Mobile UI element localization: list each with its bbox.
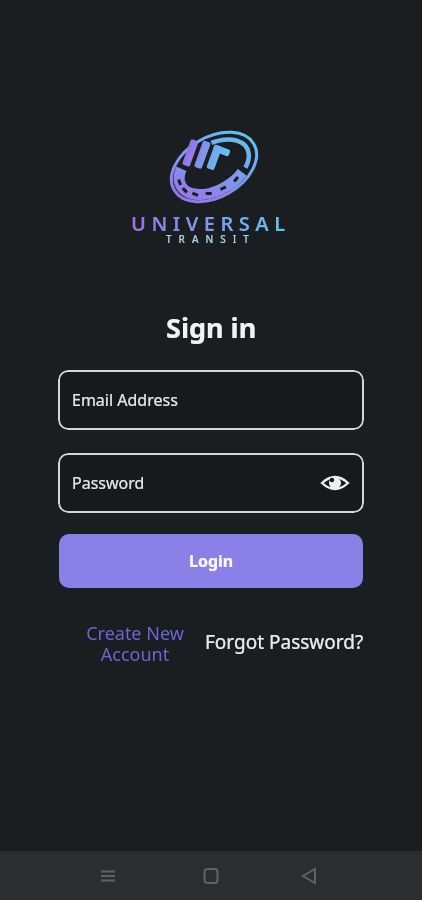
button[interactable]: Create New Account bbox=[86, 621, 184, 667]
button[interactable]: Password bbox=[58, 453, 364, 513]
button[interactable] bbox=[296, 862, 324, 890]
button[interactable]: Login bbox=[59, 534, 363, 588]
button[interactable]: Email Address bbox=[58, 370, 364, 430]
button[interactable] bbox=[197, 862, 225, 890]
staticText: Sign in bbox=[166, 309, 257, 346]
staticText: Email Address bbox=[72, 389, 178, 411]
button[interactable] bbox=[321, 469, 349, 497]
button[interactable]: Forgot Password? bbox=[205, 629, 364, 655]
staticText: UNIVERSAL bbox=[131, 210, 291, 237]
staticText: Login bbox=[189, 550, 234, 572]
staticText: TRANSIT bbox=[166, 232, 256, 246]
staticText: Password bbox=[72, 472, 145, 494]
button[interactable] bbox=[94, 862, 122, 890]
